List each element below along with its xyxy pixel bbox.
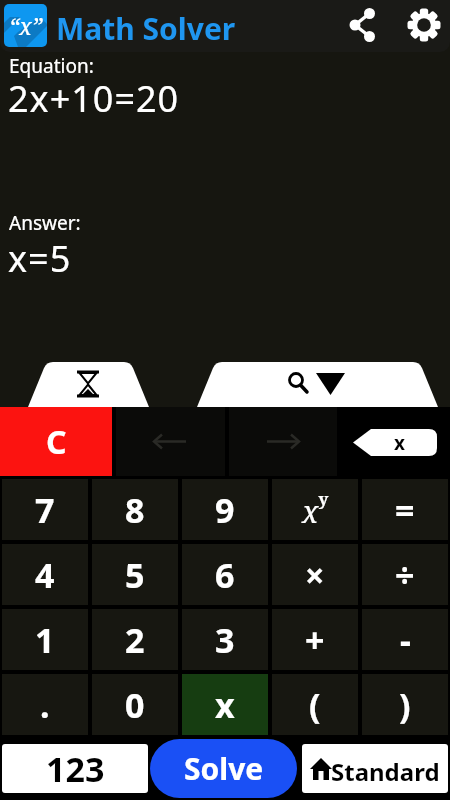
button[interactable] (28, 362, 148, 407)
button[interactable]: Standard (302, 744, 448, 793)
button[interactable]: . (2, 674, 88, 735)
staticText: 5 (125, 552, 145, 598)
button[interactable]: Solve (150, 739, 297, 798)
button[interactable]: C (0, 407, 112, 476)
staticText: - (400, 617, 411, 663)
button[interactable]: 6 (182, 544, 268, 605)
button[interactable]: 0 (92, 674, 178, 735)
button[interactable] (405, 6, 443, 44)
button[interactable]: = (362, 479, 448, 540)
staticText: 123 (46, 746, 105, 792)
button[interactable] (229, 407, 337, 476)
staticText: 8 (125, 487, 145, 533)
staticText: . (40, 682, 50, 728)
staticText: x (215, 682, 235, 728)
staticText: Math Solver (56, 8, 236, 49)
staticText: 9 (215, 487, 235, 533)
staticText: “x” (9, 10, 43, 41)
button[interactable]: 7 (2, 479, 88, 540)
staticText: 4 (35, 552, 55, 598)
button[interactable]: 2 (92, 609, 178, 670)
staticText: Solve (184, 748, 264, 789)
button[interactable]: ( (272, 674, 358, 735)
staticText: Standard (331, 755, 440, 788)
staticText: xy (302, 487, 329, 532)
button[interactable]: 4 (2, 544, 88, 605)
button[interactable] (116, 407, 225, 476)
button[interactable] (197, 362, 437, 407)
button[interactable]: + (272, 609, 358, 670)
staticText: 3 (215, 617, 235, 663)
button[interactable]: ÷ (362, 544, 448, 605)
staticText: = (395, 487, 415, 533)
button[interactable] (344, 6, 382, 44)
button[interactable]: 123 (2, 744, 148, 793)
button[interactable]: x (182, 674, 268, 735)
staticText: × (305, 552, 325, 598)
staticText: x (394, 430, 405, 456)
staticText: 2x+10=20 (8, 74, 180, 123)
staticText: Answer: (9, 210, 81, 236)
button[interactable]: 8 (92, 479, 178, 540)
button[interactable]: x (353, 429, 437, 456)
staticText: 1 (35, 617, 55, 663)
button[interactable]: 1 (2, 609, 88, 670)
staticText: 6 (215, 552, 235, 598)
button[interactable]: 9 (182, 479, 268, 540)
staticText: ) (399, 682, 411, 728)
staticText: Equation: (9, 53, 94, 79)
button[interactable]: 5 (92, 544, 178, 605)
staticText: 0 (125, 682, 145, 728)
button[interactable]: xy (272, 479, 358, 540)
button[interactable]: × (272, 544, 358, 605)
button[interactable]: ) (362, 674, 448, 735)
staticText: 7 (35, 487, 55, 533)
button[interactable]: - (362, 609, 448, 670)
staticText: C (46, 420, 67, 464)
staticText: + (305, 617, 325, 663)
staticText: x=5 (8, 234, 72, 283)
button[interactable]: 3 (182, 609, 268, 670)
staticText: ( (309, 682, 321, 728)
staticText: ÷ (395, 552, 415, 598)
staticText: 2 (125, 617, 145, 663)
